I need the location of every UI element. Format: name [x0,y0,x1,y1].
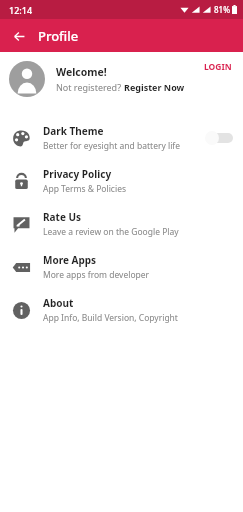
button[interactable]: Dark Theme [0,116,243,159]
button[interactable]: Back [8,25,30,47]
staticText: About [43,296,74,310]
button[interactable] [203,129,233,147]
button[interactable]: LOGIN [201,59,235,75]
button[interactable]: More Apps [0,245,243,288]
staticText: Leave a review on the Google Play [43,226,179,238]
staticText: Rate Us [43,210,82,224]
staticText: Not registered? [56,81,124,93]
staticText: 12:14 [9,4,33,16]
staticText: Profile [38,27,79,45]
staticText: Welcome! [56,65,107,79]
staticText: Privacy Policy [43,167,112,181]
staticText: LOGIN [204,61,232,73]
staticText: App Info, Build Version, Copyright [43,312,178,324]
button[interactable]: About [0,288,243,331]
staticText: Better for eyesight and battery life [43,140,181,152]
button[interactable]: Rate Us [0,202,243,245]
staticText: More Apps [43,253,97,267]
staticText: App Terms & Policies [43,183,127,195]
button[interactable]: Welcome! [0,52,243,106]
button[interactable]: Privacy Policy [0,159,243,202]
staticText: Dark Theme [43,124,104,138]
button[interactable]: Register Now [124,81,185,93]
staticText: 81% [214,4,230,15]
staticText: More apps from developer [43,269,150,281]
